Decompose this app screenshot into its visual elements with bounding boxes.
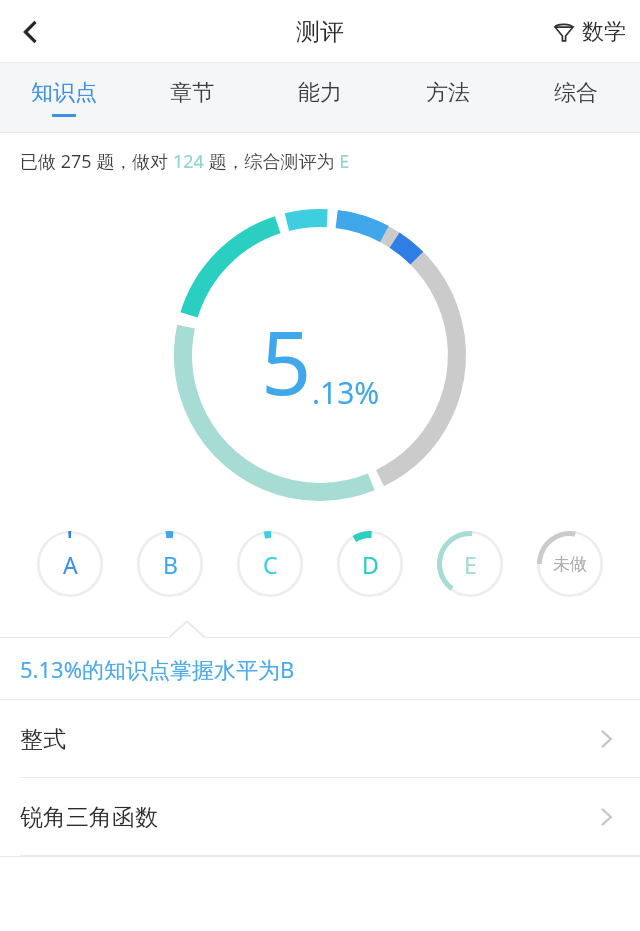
staticText: 综合: [554, 79, 598, 107]
button[interactable]: B: [132, 526, 208, 602]
staticText: 测评: [296, 17, 344, 47]
staticText: .13%: [312, 372, 380, 413]
button[interactable]: 能力: [256, 63, 384, 133]
staticText: 数学: [582, 18, 626, 46]
button[interactable]: 章节: [128, 63, 256, 133]
staticText: D: [362, 549, 379, 580]
button[interactable]: 知识点: [0, 63, 128, 133]
button[interactable]: Back: [4, 5, 58, 59]
staticText: 整式: [20, 725, 66, 754]
button[interactable]: A: [32, 526, 108, 602]
button[interactable]: 整式: [0, 700, 640, 778]
button[interactable]: 方法: [384, 63, 512, 133]
button[interactable]: C: [232, 526, 308, 602]
staticText: 5: [261, 301, 312, 421]
staticText: 5.13%的知识点掌握水平为B: [20, 654, 295, 684]
button[interactable]: 未做: [532, 526, 608, 602]
button[interactable]: Filter subject 数学: [554, 18, 626, 46]
staticText: 知识点: [31, 79, 97, 107]
staticText: 未做: [553, 554, 587, 575]
staticText: 能力: [298, 79, 342, 107]
staticText: 章节: [170, 79, 214, 107]
staticText: E: [464, 549, 477, 580]
staticText: 已做 275 题，做对 124 题，综合测评为 E: [20, 149, 350, 174]
staticText: 方法: [426, 79, 470, 107]
staticText: 锐角三角函数: [20, 803, 158, 832]
button[interactable]: 锐角三角函数: [0, 778, 640, 856]
staticText: A: [63, 549, 78, 580]
staticText: C: [263, 549, 278, 580]
staticText: B: [163, 549, 178, 580]
button[interactable]: E: [432, 526, 508, 602]
button[interactable]: 综合: [512, 63, 640, 133]
button[interactable]: D: [332, 526, 408, 602]
